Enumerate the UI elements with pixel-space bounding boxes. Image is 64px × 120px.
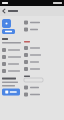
button[interactable]	[2, 88, 20, 95]
button[interactable]: Item	[24, 84, 43, 91]
button[interactable]: Item	[24, 26, 43, 33]
button[interactable]: Item	[2, 46, 24, 53]
button[interactable]: Item	[2, 67, 24, 74]
button[interactable]: Item	[24, 58, 43, 65]
button[interactable]: Item	[24, 51, 43, 58]
button[interactable]: Item	[24, 65, 43, 72]
button[interactable]: Back	[2, 8, 6, 14]
button[interactable]: Item	[24, 19, 43, 26]
button[interactable]: Item	[2, 60, 24, 67]
button[interactable]: Item	[24, 91, 43, 98]
button[interactable]: Item	[24, 44, 43, 51]
button[interactable]: Item	[2, 53, 24, 60]
button[interactable]	[2, 29, 15, 34]
